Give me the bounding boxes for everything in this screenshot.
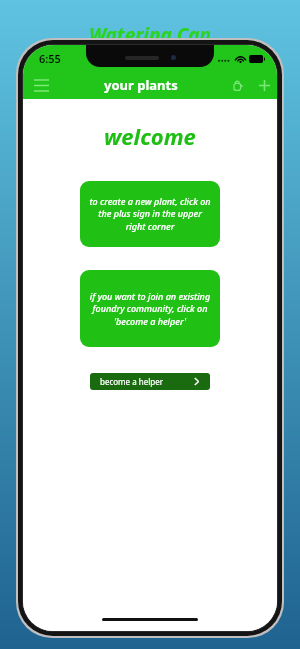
staticText: welcome (104, 121, 196, 151)
staticText: 6:55 (39, 51, 61, 66)
button[interactable]: if you want to join an existing foundry … (80, 270, 220, 347)
button[interactable]: Watering can (223, 71, 251, 99)
staticText: to create a new plant, click on the plus… (89, 195, 211, 233)
button[interactable]: to create a new plant, click on the plus… (80, 181, 220, 247)
button[interactable]: Menu (23, 71, 59, 99)
staticText: become a helper (100, 376, 193, 387)
staticText: if you want to join an existing foundry … (89, 290, 211, 328)
button[interactable]: Add plant (251, 71, 277, 99)
staticText: your plants (104, 76, 178, 94)
staticText: Watering Can (89, 22, 212, 48)
button[interactable]: become a helper (90, 373, 210, 390)
